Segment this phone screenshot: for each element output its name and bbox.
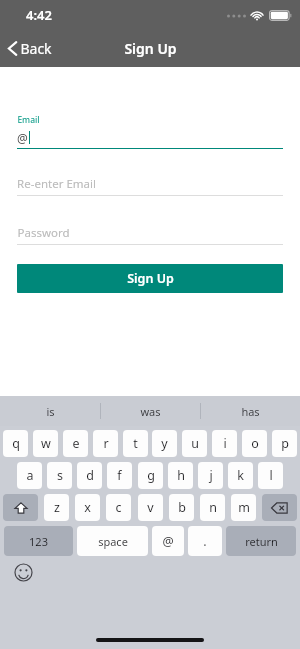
button[interactable]: i [212, 430, 237, 457]
staticText: return [245, 534, 278, 549]
staticText: g [147, 467, 155, 484]
staticText: a [26, 467, 34, 484]
button[interactable]: . [188, 526, 222, 556]
staticText: Sign Up [127, 270, 174, 287]
staticText: has [241, 404, 260, 419]
button[interactable]: Back [0, 30, 62, 67]
staticText: c [115, 499, 122, 516]
staticText: 4:42 [26, 6, 52, 24]
button[interactable]: y [152, 430, 177, 457]
button[interactable]: f [107, 462, 132, 489]
staticText: i [223, 435, 227, 452]
button[interactable]: t [123, 430, 148, 457]
button[interactable]: m [231, 494, 256, 521]
button[interactable]: v [138, 494, 163, 521]
staticText: v [147, 499, 154, 516]
staticText: was [140, 404, 161, 419]
staticText: w [41, 435, 51, 452]
button[interactable]: s [47, 462, 72, 489]
staticText: n [209, 499, 217, 516]
staticText: l [269, 467, 273, 484]
staticText: is [46, 404, 55, 419]
staticText: 123 [29, 534, 48, 549]
staticText: d [86, 467, 94, 484]
button[interactable]: Sign Up [17, 264, 283, 293]
staticText: s [57, 467, 63, 484]
button[interactable]: c [106, 494, 131, 521]
button[interactable]: k [228, 462, 253, 489]
button[interactable]: Shift [3, 494, 38, 521]
button[interactable]: q [3, 430, 28, 457]
button[interactable]: h [168, 462, 193, 489]
staticText: q [12, 435, 20, 452]
staticText: h [177, 467, 185, 484]
staticText: Password [17, 225, 70, 241]
button[interactable]: b [169, 494, 194, 521]
button[interactable]: Sign Up [118, 33, 183, 64]
button[interactable]: has [201, 396, 300, 426]
button[interactable]: Emoji keyboard [14, 563, 33, 582]
button[interactable]: n [200, 494, 225, 521]
button[interactable]: return [226, 526, 296, 556]
button[interactable]: e [63, 430, 88, 457]
staticText: space [98, 534, 128, 549]
staticText: m [238, 499, 250, 516]
button[interactable]: is [0, 396, 100, 426]
button[interactable]: @ [17, 129, 283, 146]
button[interactable]: Password [17, 224, 283, 241]
button[interactable]: z [44, 494, 69, 521]
staticText: j [209, 467, 213, 484]
staticText: k [237, 467, 244, 484]
staticText: o [251, 435, 259, 452]
staticText: Re-enter Email [17, 176, 96, 192]
button[interactable]: g [138, 462, 163, 489]
staticText: u [191, 435, 199, 452]
staticText: y [161, 435, 168, 452]
staticText: p [281, 435, 289, 452]
button[interactable]: l [258, 462, 283, 489]
button[interactable]: a [17, 462, 42, 489]
button[interactable]: p [272, 430, 297, 457]
staticText: Sign Up [124, 39, 177, 58]
staticText: e [72, 435, 80, 452]
button[interactable]: 123 [4, 526, 73, 556]
button[interactable]: o [242, 430, 267, 457]
staticText: @ [17, 130, 28, 146]
button[interactable]: @ [152, 526, 184, 556]
staticText: t [133, 435, 138, 452]
button[interactable]: x [75, 494, 100, 521]
staticText: r [103, 435, 109, 452]
staticText: x [84, 499, 91, 516]
button[interactable]: space [77, 526, 148, 556]
button[interactable]: u [182, 430, 207, 457]
staticText: @ [162, 533, 174, 550]
staticText: . [203, 533, 207, 550]
button[interactable]: Re-enter Email [17, 175, 283, 192]
button[interactable]: d [77, 462, 102, 489]
button[interactable]: w [33, 430, 58, 457]
staticText: z [54, 499, 60, 516]
button[interactable]: j [198, 462, 223, 489]
staticText: Back [20, 39, 52, 58]
button[interactable]: r [93, 430, 118, 457]
staticText: f [117, 467, 122, 484]
button[interactable]: Backspace [262, 494, 297, 521]
staticText: b [178, 499, 186, 516]
button[interactable]: was [101, 396, 200, 426]
staticText: Email [17, 114, 40, 126]
